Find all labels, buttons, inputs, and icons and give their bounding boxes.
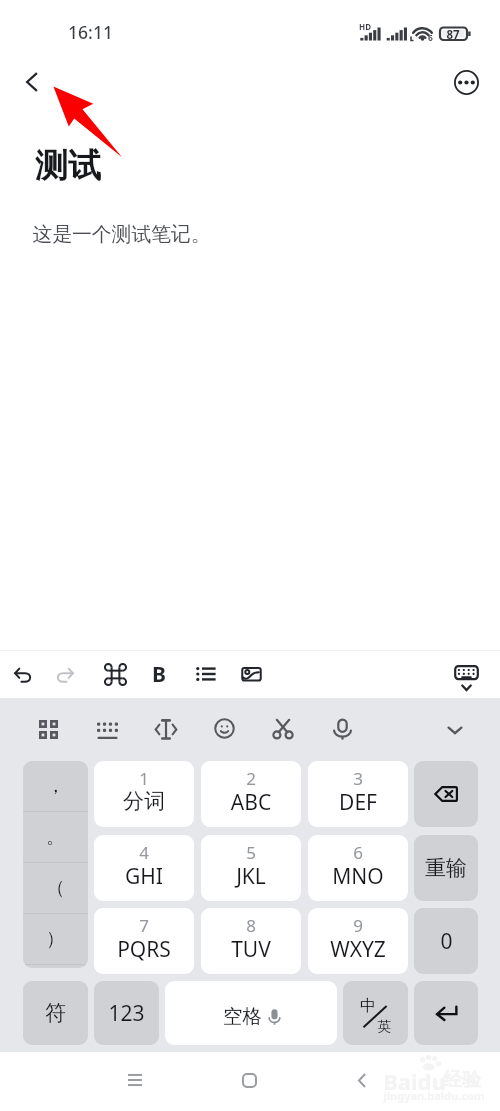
staticText: 87 (446, 27, 460, 43)
button[interactable]: Recent apps (112, 1057, 158, 1103)
button[interactable]: Home (226, 1057, 272, 1103)
button[interactable]: 4 (94, 835, 194, 901)
staticText: MNO (308, 862, 408, 891)
staticText: 7 (94, 914, 194, 937)
staticText: 经验 (443, 1068, 481, 1092)
button[interactable]: 5 (201, 835, 301, 901)
staticText: jingyan.baidu.com (383, 1088, 485, 1103)
button[interactable]: Back (339, 1057, 385, 1103)
staticText: 0 (440, 927, 453, 956)
button[interactable]: 3 (308, 761, 408, 827)
button[interactable]: Apps (27, 708, 69, 750)
staticText: 中 (360, 996, 376, 1016)
button[interactable]: Hide keyboard (445, 657, 487, 699)
staticText: 重输 (425, 855, 467, 881)
button[interactable]: 123 (94, 981, 159, 1045)
button[interactable]: 8 (201, 908, 301, 974)
button[interactable]: 空格 (165, 981, 337, 1045)
staticText: DEF (308, 788, 408, 817)
staticText: ） (46, 927, 65, 951)
button[interactable]: 0 (414, 908, 478, 974)
staticText: 16:11 (68, 20, 113, 44)
staticText: JKL (201, 862, 301, 891)
staticText: Baidu (383, 1066, 446, 1096)
button[interactable]: Collapse keyboard (434, 709, 476, 751)
button[interactable]: Enter (414, 981, 478, 1045)
button[interactable]: 1 (94, 761, 194, 827)
button[interactable]: Emoji (203, 707, 245, 749)
button[interactable]: ） (23, 914, 88, 964)
button[interactable]: Cut (262, 708, 304, 750)
staticText: 2 (201, 767, 301, 790)
button[interactable]: （ (23, 863, 88, 913)
button[interactable]: More options (440, 56, 492, 108)
staticText: 8 (201, 914, 301, 937)
button[interactable]: 中 (343, 981, 408, 1045)
staticText: ， (46, 774, 65, 798)
button[interactable]: Move cursor (145, 708, 187, 750)
button[interactable]: 6 (308, 835, 408, 901)
staticText: 测试 (35, 145, 101, 187)
staticText: 这是一个测试笔记。 (32, 222, 211, 247)
button[interactable]: 符 (23, 981, 88, 1045)
staticText: 1 (94, 767, 194, 790)
button[interactable]: Back (6, 56, 58, 108)
staticText: PQRS (94, 935, 194, 964)
staticText: 9 (308, 914, 408, 937)
button[interactable]: Keyboard layout (86, 709, 128, 751)
button[interactable]: Insert image (230, 652, 272, 696)
staticText: 4 (94, 841, 194, 864)
button[interactable]: B (138, 652, 180, 696)
button[interactable]: 7 (94, 908, 194, 974)
button[interactable]: 重输 (414, 835, 478, 901)
staticText: GHI (94, 862, 194, 891)
button[interactable]: Backspace (414, 761, 478, 827)
staticText: WXYZ (308, 935, 408, 964)
staticText: 5 (201, 841, 301, 864)
staticText: （ (46, 876, 65, 900)
button[interactable]: Voice input (321, 708, 363, 750)
button[interactable]: Redo (43, 652, 85, 696)
button[interactable]: 2 (201, 761, 301, 827)
staticText: HD (359, 21, 371, 32)
staticText: 6 (428, 32, 433, 44)
staticText: 分词 (94, 788, 194, 814)
staticText: 。 (46, 825, 65, 849)
staticText: 6 (308, 841, 408, 864)
button[interactable]: Formatting (94, 652, 136, 696)
staticText: 123 (108, 999, 145, 1028)
button[interactable]: Bulleted list (185, 652, 227, 696)
button[interactable]: Undo (2, 652, 44, 696)
staticText: 3 (308, 767, 408, 790)
staticText: B (152, 660, 166, 689)
button[interactable]: ， (23, 761, 88, 811)
button[interactable]: 9 (308, 908, 408, 974)
staticText: TUV (201, 935, 301, 964)
button[interactable]: 。 (23, 812, 88, 862)
staticText: ABC (201, 788, 301, 817)
staticText: 英 (377, 1018, 391, 1035)
staticText: 空格 (223, 1004, 262, 1029)
staticText: 符 (45, 1000, 66, 1026)
